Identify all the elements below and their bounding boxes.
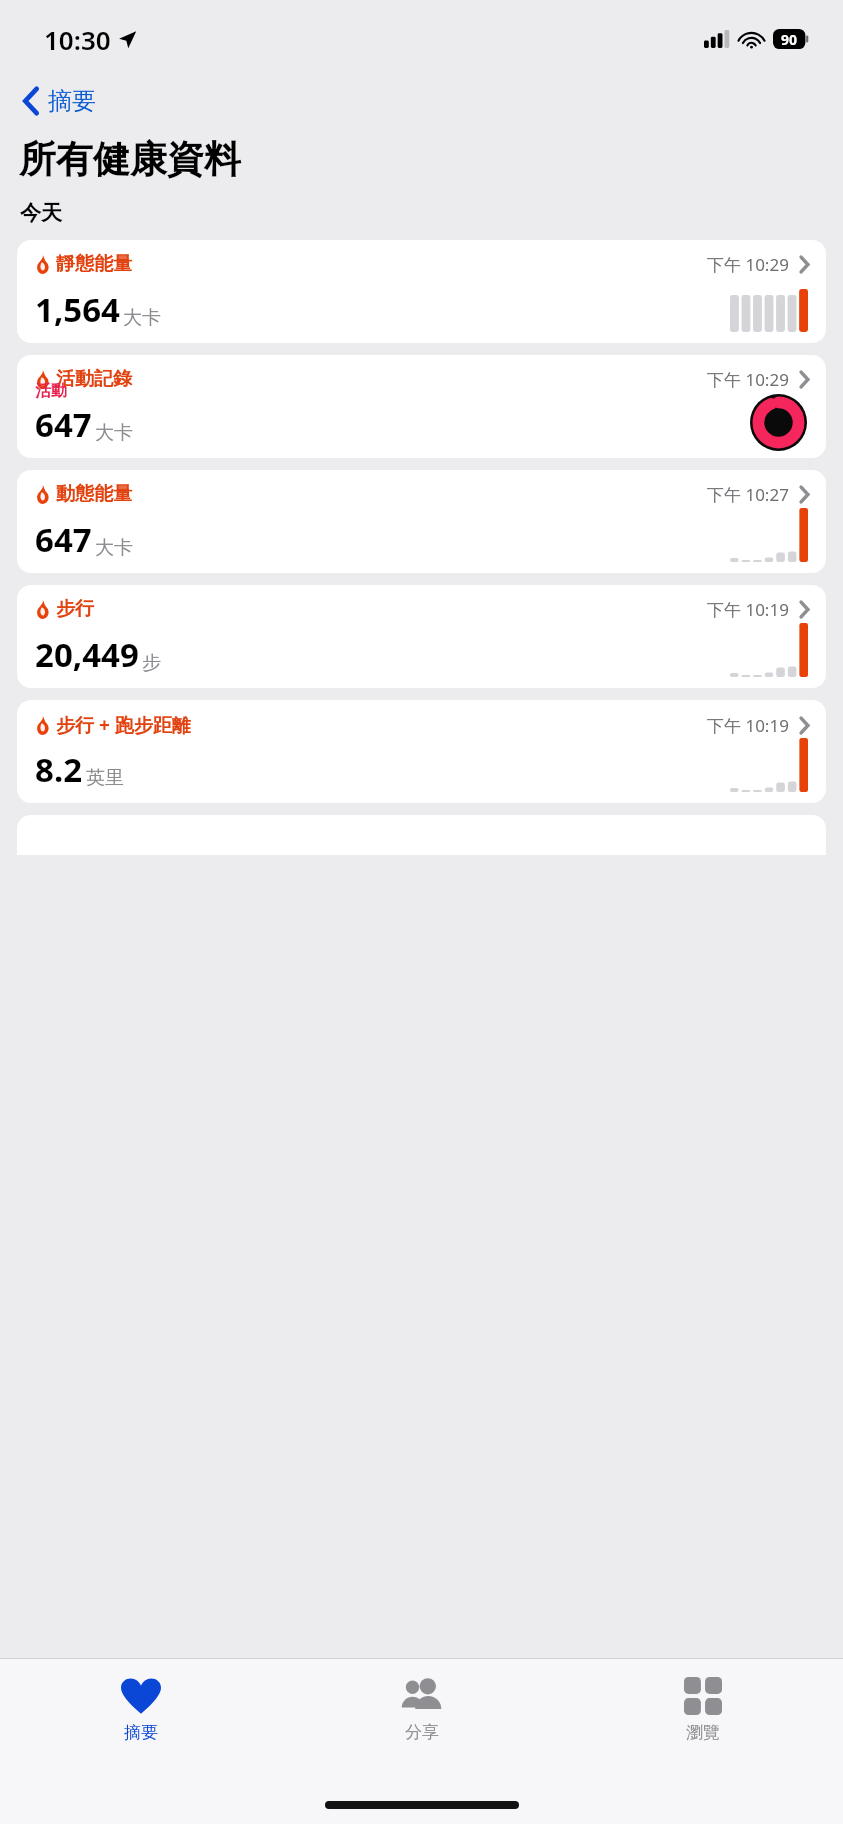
button[interactable]: 摘要	[22, 78, 108, 124]
staticText: 大卡	[95, 421, 133, 445]
button[interactable]: 活動記錄	[17, 355, 826, 458]
staticText: 今天	[20, 200, 62, 226]
staticText: 下午 10:19	[707, 714, 789, 737]
staticText: 活動記錄	[56, 367, 132, 391]
staticText: 20,449	[35, 632, 139, 677]
staticText: 10:30	[44, 22, 111, 57]
other: 瀏覽	[684, 1677, 722, 1715]
staticText: 摘要	[48, 86, 96, 116]
staticText: 647	[35, 402, 92, 447]
staticText: 647	[35, 517, 92, 562]
staticText: 活動	[35, 381, 67, 401]
button[interactable]: 步行 + 跑步距離	[17, 700, 826, 803]
staticText: 靜態能量	[56, 252, 132, 276]
staticText: 大卡	[123, 306, 161, 330]
staticText: 摘要	[124, 1722, 158, 1743]
staticText: 下午 10:29	[707, 253, 789, 276]
staticText: 90	[781, 30, 798, 49]
staticText: 下午 10:19	[707, 598, 789, 621]
staticText: 步行 + 跑步距離	[56, 712, 191, 738]
staticText: 1,564	[35, 287, 120, 332]
staticText: 下午 10:27	[707, 483, 789, 506]
staticText: 動態能量	[56, 482, 132, 506]
staticText: 分享	[405, 1722, 439, 1743]
button[interactable]: 摘要	[0, 1673, 281, 1747]
staticText: 瀏覽	[686, 1722, 720, 1743]
button[interactable]: 動態能量	[17, 470, 826, 573]
staticText: 步行	[56, 597, 94, 621]
button[interactable]: 步行	[17, 585, 826, 688]
button[interactable]: 瀏覽	[562, 1673, 843, 1747]
staticText: 步	[142, 651, 161, 675]
button[interactable]: 靜態能量	[17, 240, 826, 343]
staticText: 英里	[86, 766, 124, 790]
staticText: 所有健康資料	[19, 136, 241, 183]
staticText: 8.2	[35, 747, 83, 792]
button[interactable]: 分享	[281, 1673, 562, 1747]
staticText: 大卡	[95, 536, 133, 560]
staticText: 下午 10:29	[707, 368, 789, 391]
other: 分享	[399, 1677, 444, 1715]
